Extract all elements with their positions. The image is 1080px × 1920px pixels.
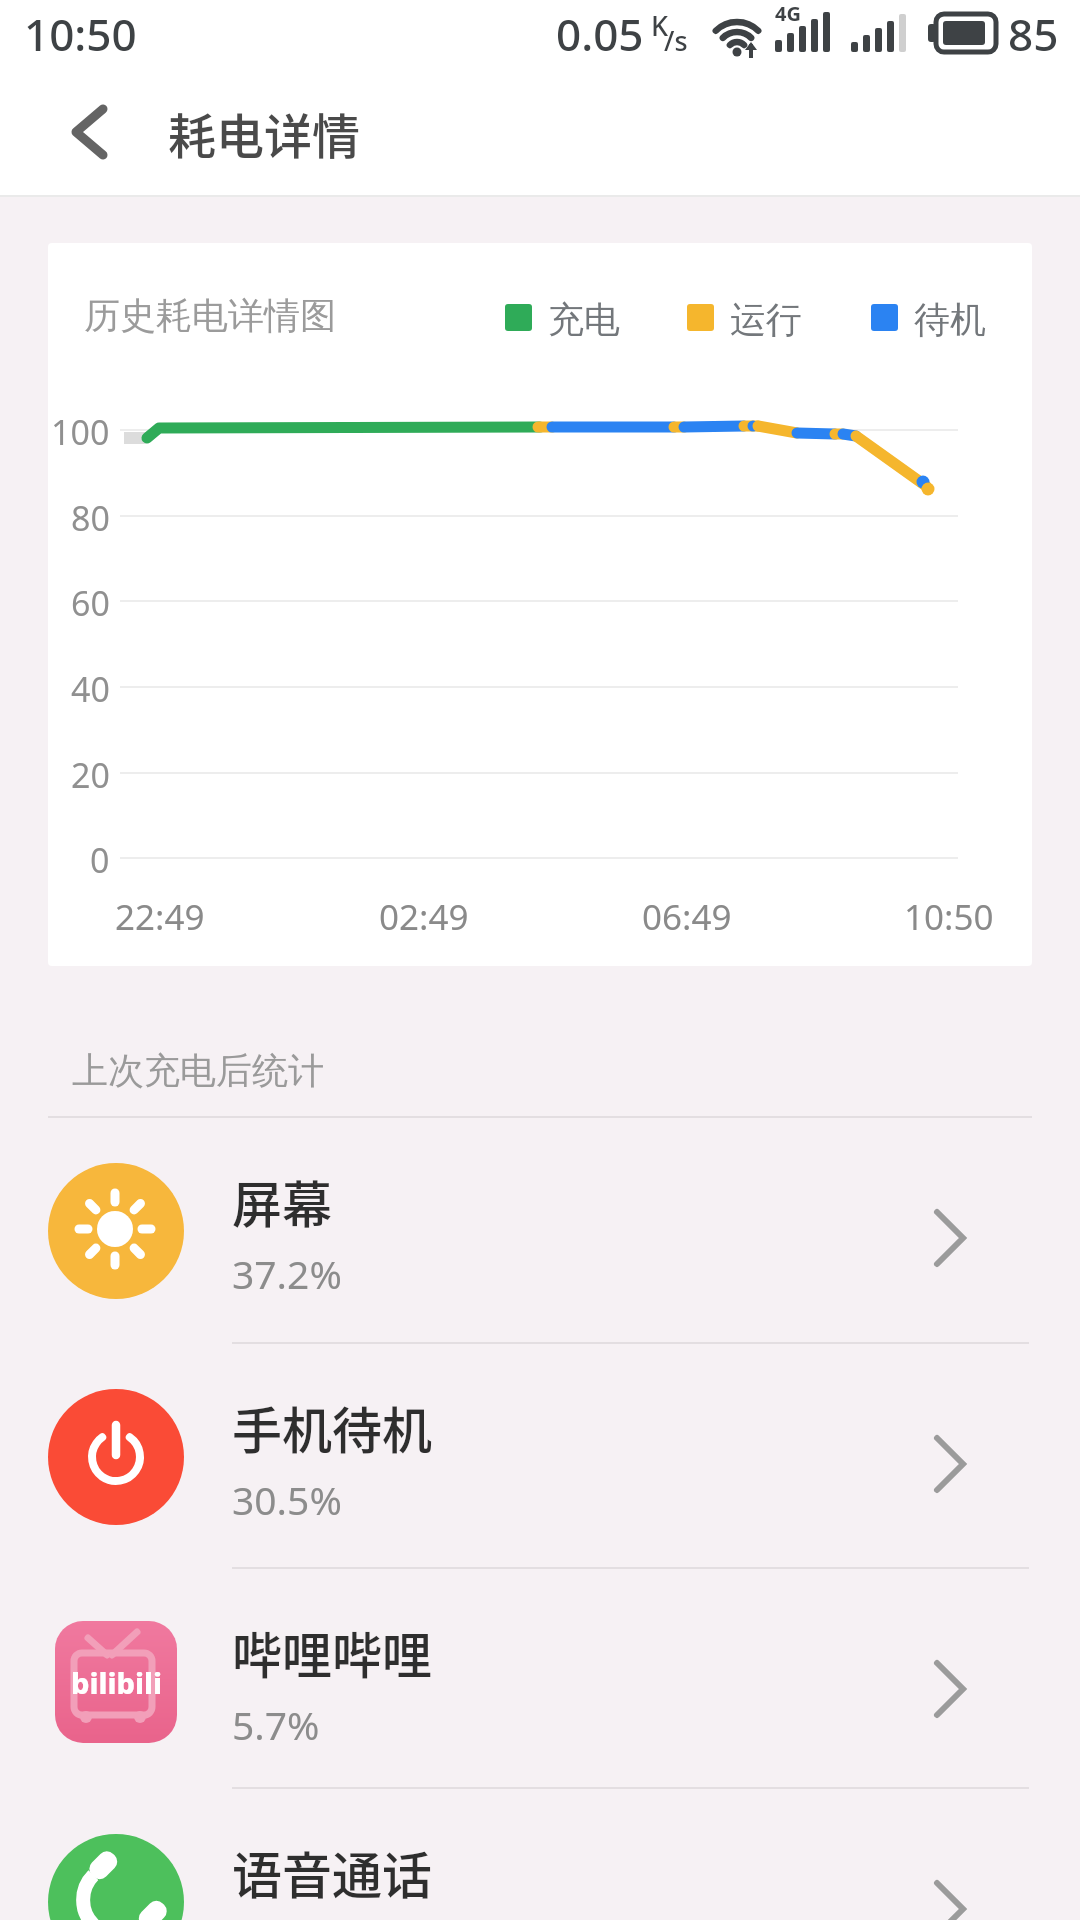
- staticText: 06:49: [642, 893, 732, 941]
- button[interactable]: 语音通话: [0, 1788, 1080, 1920]
- staticText: 80: [71, 495, 110, 541]
- staticText: 耗电详情: [168, 98, 361, 168]
- staticText: 语音通话: [232, 1836, 432, 1908]
- staticText: 37.2%: [232, 1247, 342, 1300]
- staticText: K: [651, 7, 669, 44]
- staticText: 60: [71, 580, 110, 626]
- staticText: 上次充电后统计: [72, 1048, 324, 1093]
- staticText: 40: [71, 666, 110, 712]
- button[interactable]: bilibili: [0, 1568, 1080, 1793]
- staticText: /s: [664, 22, 688, 59]
- staticText: bilibili: [71, 1663, 162, 1702]
- staticText: 10:50: [904, 893, 994, 941]
- staticText: 30.5%: [232, 1473, 342, 1526]
- button[interactable]: 手机待机: [0, 1343, 1080, 1568]
- staticText: 哔哩哔哩: [232, 1616, 432, 1688]
- staticText: 待机: [914, 297, 986, 342]
- staticText: 20: [71, 752, 110, 798]
- staticText: 100: [51, 409, 110, 455]
- staticText: 5.7%: [232, 1698, 320, 1751]
- staticText: 0.05: [556, 4, 644, 64]
- staticText: 85: [1008, 4, 1059, 64]
- staticText: 手机待机: [232, 1391, 432, 1463]
- button[interactable]: 屏幕: [0, 1117, 1080, 1342]
- staticText: 屏幕: [232, 1165, 332, 1237]
- button[interactable]: [40, 90, 136, 176]
- staticText: 历史耗电详情图: [84, 293, 336, 338]
- staticText: 0: [90, 837, 110, 883]
- staticText: 22:49: [115, 893, 205, 941]
- staticText: 运行: [730, 297, 802, 342]
- staticText: 充电: [548, 297, 620, 342]
- staticText: 02:49: [379, 893, 469, 941]
- staticText: 4G: [775, 0, 801, 27]
- staticText: 10:50: [24, 4, 137, 64]
